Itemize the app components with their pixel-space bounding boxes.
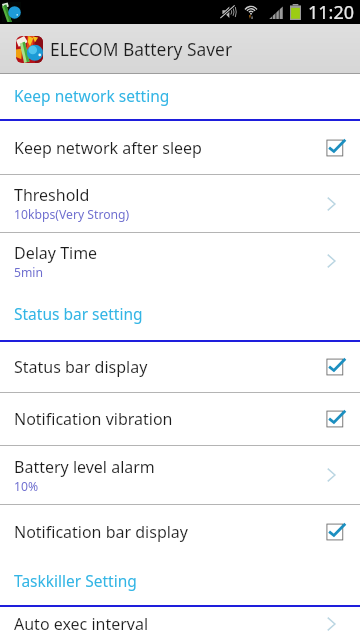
button[interactable]: Toggle Keep network after sleep (314, 121, 360, 174)
staticText: 10% (14, 478, 39, 495)
staticText: 11:20 (308, 0, 355, 24)
button[interactable]: Notification vibration (0, 393, 360, 445)
button[interactable]: Toggle Notification bar display (314, 505, 360, 558)
staticText: 5min (14, 264, 44, 281)
button[interactable]: Keep network after sleep (0, 121, 360, 174)
staticText: Threshold (14, 184, 90, 206)
staticText: Status bar display (14, 356, 148, 378)
staticText: Battery level alarm (14, 456, 155, 478)
other: App icon, navigate up (16, 36, 43, 63)
button[interactable]: App icon, navigate up (0, 24, 360, 74)
staticText: Keep network after sleep (14, 137, 202, 159)
button[interactable]: Notification bar display (0, 505, 360, 558)
staticText: Notification bar display (14, 521, 188, 543)
staticText: Taskkiller Setting (14, 570, 137, 591)
button[interactable]: Toggle Notification vibration (314, 393, 360, 445)
button[interactable]: Status bar display (0, 342, 360, 392)
button[interactable]: Toggle Status bar display (314, 342, 360, 392)
staticText: 10kbps(Very Strong) (14, 206, 130, 223)
staticText: Keep network setting (14, 85, 170, 106)
staticText: Auto exec interval (14, 613, 149, 635)
button[interactable]: Battery level alarm (0, 446, 360, 504)
staticText: Notification vibration (14, 408, 173, 430)
button[interactable]: Threshold (0, 175, 360, 232)
staticText: Delay Time (14, 242, 98, 264)
button[interactable]: Delay Time (0, 233, 360, 289)
staticText: ELECOM Battery Saver (50, 37, 233, 61)
button[interactable]: Auto exec interval (0, 607, 360, 640)
staticText: Status bar setting (14, 303, 143, 324)
